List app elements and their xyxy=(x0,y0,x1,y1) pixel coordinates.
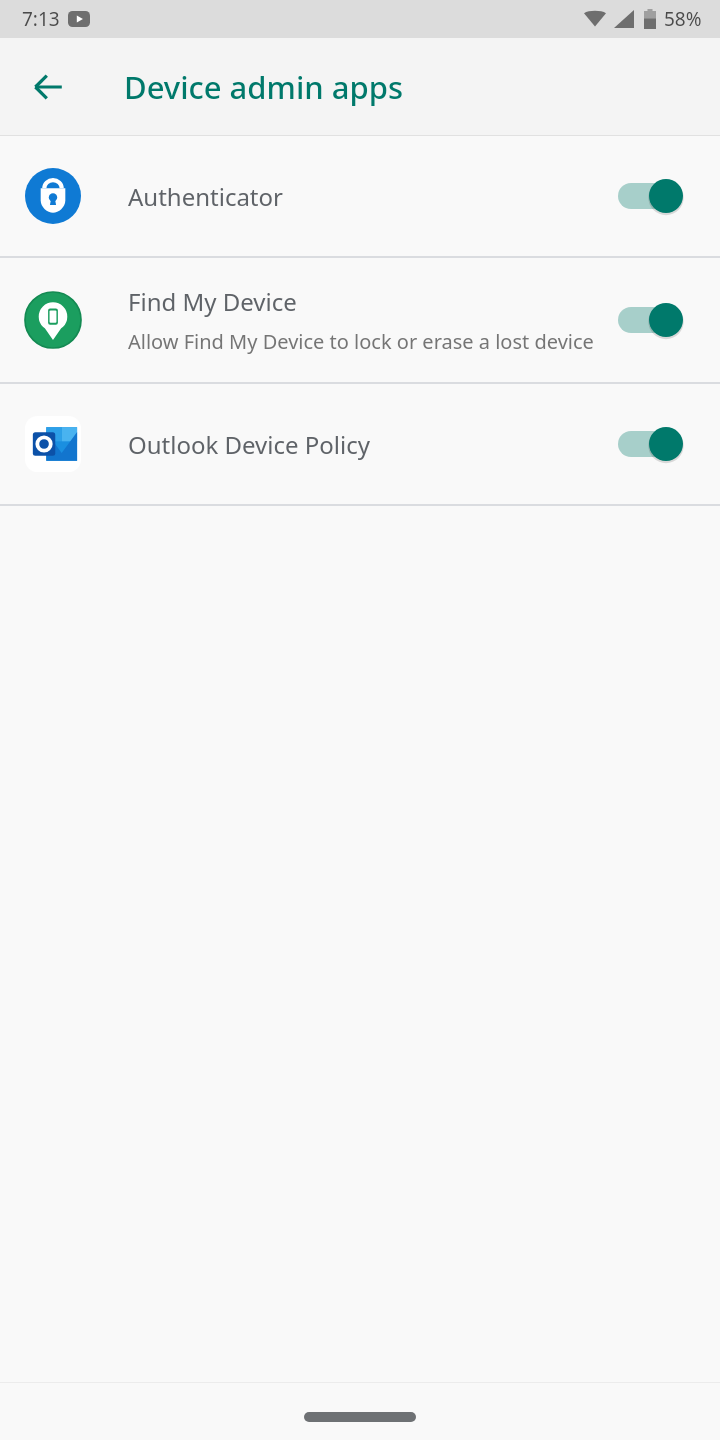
staticText: Allow Find My Device to lock or erase a … xyxy=(128,328,594,355)
staticText: Outlook Device Policy xyxy=(128,428,370,461)
button[interactable]: Find My Device xyxy=(0,258,720,382)
button[interactable]: Home gesture xyxy=(304,1412,416,1422)
button[interactable]: Back xyxy=(12,51,84,123)
button[interactable]: Outlook Device Policy xyxy=(0,384,720,504)
staticText: Authenticator xyxy=(128,180,283,213)
button[interactable]: Toggle xyxy=(618,420,692,468)
button[interactable]: Authenticator xyxy=(0,136,720,256)
button[interactable]: Toggle xyxy=(618,296,692,344)
staticText: Device admin apps xyxy=(124,66,404,108)
button[interactable]: Toggle xyxy=(618,172,692,220)
staticText: 7:13 xyxy=(22,6,60,32)
staticText: 58% xyxy=(664,6,702,32)
staticText: Find My Device xyxy=(128,285,297,318)
